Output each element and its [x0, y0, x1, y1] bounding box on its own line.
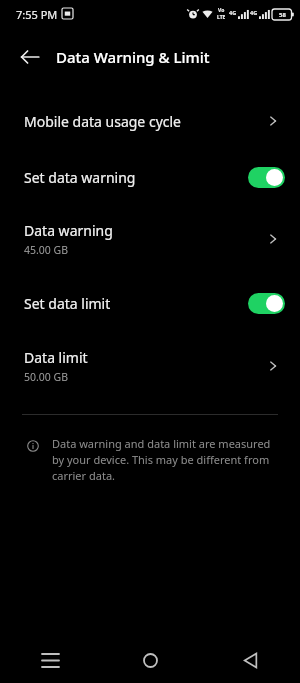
button[interactable]: Set data warning — [0, 155, 300, 199]
button[interactable]: Home — [130, 640, 170, 680]
button[interactable]: Mobile data usage cycle — [0, 100, 300, 142]
button[interactable]: Data limit — [0, 339, 300, 393]
staticText: Mobile data usage cycle — [24, 112, 181, 131]
staticText: 4G — [229, 9, 237, 16]
staticText: 45.00 GB — [24, 243, 69, 257]
staticText: 4G — [250, 9, 258, 16]
button[interactable]: Data warning — [0, 212, 300, 266]
button[interactable]: Set data limit — [0, 281, 300, 325]
staticText: 50.00 GB — [24, 370, 69, 384]
staticText: Data Warning & Limit — [56, 47, 210, 67]
staticText: 7:55 PM — [16, 7, 58, 22]
button[interactable]: Back — [12, 39, 48, 75]
button[interactable]: Recent apps — [30, 640, 70, 680]
staticText: Set data warning — [24, 168, 136, 187]
button[interactable]: Back — [230, 640, 270, 680]
staticText: 58 — [279, 11, 286, 19]
staticText: Data warning — [24, 221, 113, 240]
staticText: Vo — [218, 7, 225, 14]
staticText: LTE — [217, 14, 226, 21]
staticText: Data limit — [24, 348, 88, 367]
staticText: Set data limit — [24, 294, 111, 313]
staticText: Data warning and data limit are measured… — [52, 436, 274, 483]
